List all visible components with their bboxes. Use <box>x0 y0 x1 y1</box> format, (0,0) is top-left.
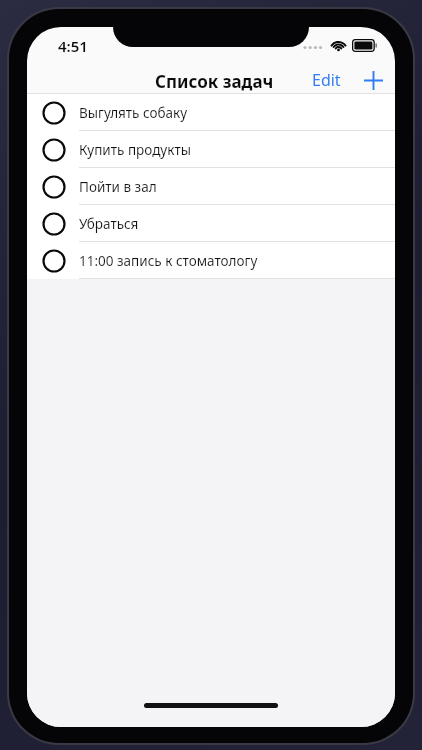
button[interactable]: Выгулять собаку <box>27 94 395 131</box>
staticText: Убраться <box>79 215 139 233</box>
button[interactable]: Убраться <box>27 205 395 242</box>
staticText: Пойти в зал <box>79 178 157 196</box>
button[interactable]: Добавить задачу <box>360 67 386 93</box>
button[interactable]: Пойти в зал <box>27 168 395 205</box>
staticText: Выгулять собаку <box>79 104 188 122</box>
staticText: Edit <box>312 69 341 91</box>
button[interactable]: Edit <box>306 66 347 94</box>
button[interactable]: 11:00 запись к стоматологу <box>27 242 395 279</box>
button[interactable]: Купить продукты <box>27 131 395 168</box>
staticText: 4:51 <box>58 36 88 56</box>
staticText: 11:00 запись к стоматологу <box>79 252 258 270</box>
staticText: Список задач <box>155 70 274 93</box>
staticText: Купить продукты <box>79 141 191 159</box>
